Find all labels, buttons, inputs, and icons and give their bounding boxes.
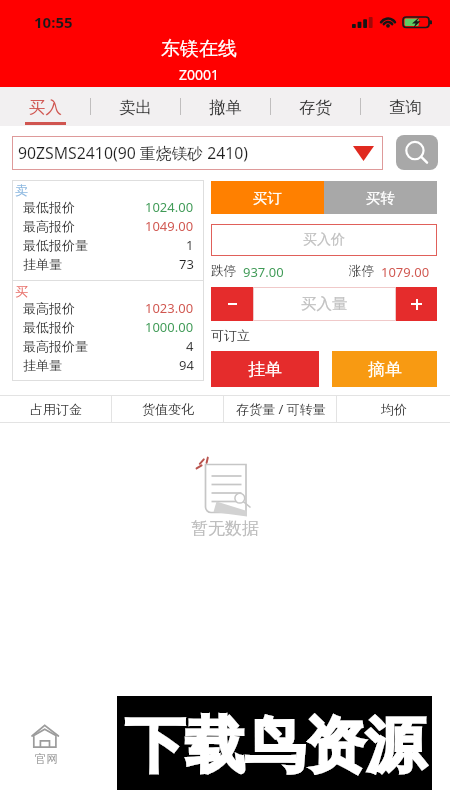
button[interactable]: 卖出 xyxy=(91,87,180,126)
staticText: 4 xyxy=(186,337,194,355)
staticText: 可订立 xyxy=(211,327,250,343)
button[interactable]: 买入价 xyxy=(211,224,437,256)
button[interactable]: 搜索 xyxy=(396,135,438,170)
staticText: 撤单 xyxy=(209,97,242,118)
staticText: 买转 xyxy=(366,189,395,207)
staticText: 1024.00 xyxy=(145,198,194,216)
staticText: 查询 xyxy=(389,97,422,118)
staticText: 挂单量 xyxy=(23,357,62,373)
staticText: 买 xyxy=(15,283,28,299)
button[interactable]: 挂单 xyxy=(211,351,319,387)
staticText: 买入 xyxy=(29,97,62,118)
staticText: 买入量 xyxy=(301,294,348,314)
staticText: 货值变化 xyxy=(142,401,194,417)
staticText: 挂单量 xyxy=(23,256,62,272)
staticText: 跌停 xyxy=(211,263,236,278)
staticText: 挂单 xyxy=(248,359,282,380)
staticText: 最高报价 xyxy=(23,300,75,316)
staticText: 买入价 xyxy=(303,231,345,249)
button[interactable]: 增加 xyxy=(396,287,437,321)
staticText: 1000.00 xyxy=(145,318,194,336)
staticText: 73 xyxy=(179,255,194,273)
staticText: 买订 xyxy=(253,189,282,207)
staticText: 1049.00 xyxy=(145,217,194,235)
staticText: 卖出 xyxy=(119,97,152,118)
button[interactable]: 减少 xyxy=(211,287,253,321)
button[interactable]: 存货 xyxy=(271,87,360,126)
staticText: 最高报价 xyxy=(23,218,75,234)
staticText: 东镁在线 xyxy=(161,37,237,61)
staticText: 最低报价 xyxy=(23,319,75,335)
staticText: 最高报价量 xyxy=(23,338,88,354)
staticText: Z0001 xyxy=(179,65,220,84)
staticText: 94 xyxy=(179,356,194,374)
button[interactable]: 货值变化 xyxy=(112,395,224,423)
button[interactable]: 买订 xyxy=(211,181,324,214)
staticText: 1079.00 xyxy=(381,263,430,278)
staticText: 10:55 xyxy=(34,12,73,32)
button[interactable]: 买入 xyxy=(0,87,90,126)
button[interactable]: 占用订金 xyxy=(0,395,112,423)
button[interactable]: 买入量 xyxy=(253,287,396,321)
staticText: 均价 xyxy=(381,401,407,417)
button[interactable]: 存货量 / 可转量 xyxy=(224,395,337,423)
staticText: 摘单 xyxy=(368,359,402,380)
staticText: 下载鸟资源 xyxy=(125,708,425,784)
button[interactable]: 摘单 xyxy=(332,351,437,387)
staticText: 存货量 / 可转量 xyxy=(236,400,326,418)
button[interactable]: 90ZSMS2410(90 重烧镁砂 2410) xyxy=(12,136,383,170)
staticText: 1 xyxy=(186,236,194,254)
staticText: 1023.00 xyxy=(145,299,194,317)
button[interactable]: 撤单 xyxy=(181,87,270,126)
staticText: 最低报价量 xyxy=(23,237,88,253)
staticText: 占用订金 xyxy=(30,401,82,417)
button[interactable]: 均价 xyxy=(337,395,450,423)
staticText: 最低报价 xyxy=(23,199,75,215)
staticText: 卖 xyxy=(15,182,28,198)
staticText: 涨停 xyxy=(349,263,374,278)
staticText: 存货 xyxy=(299,97,332,118)
button[interactable]: 买转 xyxy=(324,181,437,214)
button[interactable]: 官网 xyxy=(24,718,66,768)
staticText: 90ZSMS2410(90 重烧镁砂 2410) xyxy=(18,142,249,164)
button[interactable]: 查询 xyxy=(361,87,450,126)
staticText: 官网 xyxy=(35,752,58,766)
staticText: 937.00 xyxy=(243,263,284,278)
staticText: 暂无数据 xyxy=(191,518,259,539)
